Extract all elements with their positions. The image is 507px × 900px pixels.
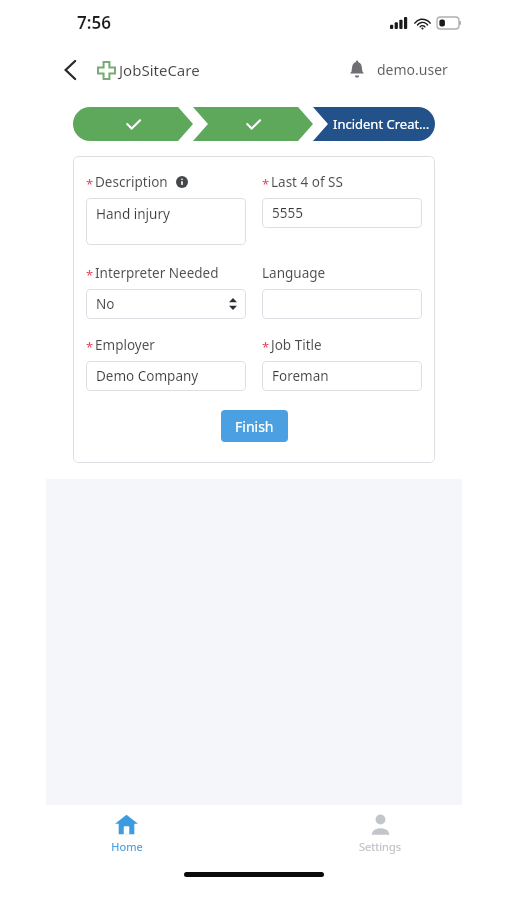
- staticText: Language: [262, 264, 326, 282]
- button[interactable]: Back: [57, 53, 84, 87]
- button[interactable]: [193, 107, 313, 141]
- staticText: *: [262, 175, 270, 193]
- staticText: *: [262, 338, 270, 356]
- staticText: Demo Company: [96, 367, 199, 385]
- staticText: *: [86, 266, 94, 284]
- staticText: *: [86, 175, 94, 193]
- button[interactable]: Foreman: [262, 361, 422, 391]
- button[interactable]: 5555: [262, 198, 422, 228]
- button[interactable]: Incident Creat…: [313, 107, 435, 141]
- other: Notifications: [349, 61, 365, 78]
- staticText: Foreman: [272, 367, 329, 385]
- staticText: Description: [95, 173, 168, 191]
- button[interactable]: Notifications: [349, 60, 448, 79]
- staticText: JobSiteCare: [119, 60, 200, 80]
- staticText: Last 4 of SS: [271, 173, 343, 191]
- button[interactable]: [262, 289, 422, 319]
- staticText: Finish: [235, 417, 274, 436]
- button[interactable]: Settings: [253, 805, 507, 863]
- button[interactable]: Demo Company: [86, 361, 246, 391]
- staticText: Job Title: [271, 336, 322, 354]
- staticText: Incident Creat…: [333, 115, 430, 133]
- staticText: 5555: [272, 204, 303, 222]
- button[interactable]: Finish: [221, 410, 288, 442]
- staticText: Employer: [95, 336, 155, 354]
- staticText: Home: [111, 839, 143, 854]
- button[interactable]: [73, 107, 193, 141]
- button[interactable]: Home: [0, 805, 253, 863]
- staticText: Settings: [359, 839, 401, 854]
- staticText: Hand injury: [96, 205, 170, 223]
- staticText: 7:56: [77, 11, 111, 34]
- button[interactable]: Hand injury: [86, 198, 246, 245]
- button[interactable]: No: [86, 289, 246, 319]
- staticText: Interpreter Needed: [95, 264, 219, 282]
- button[interactable]: JobSiteCare: [98, 60, 200, 80]
- staticText: *: [86, 338, 94, 356]
- staticText: demo.user: [377, 60, 448, 79]
- button[interactable]: Info: [176, 176, 188, 188]
- staticText: No: [96, 295, 115, 313]
